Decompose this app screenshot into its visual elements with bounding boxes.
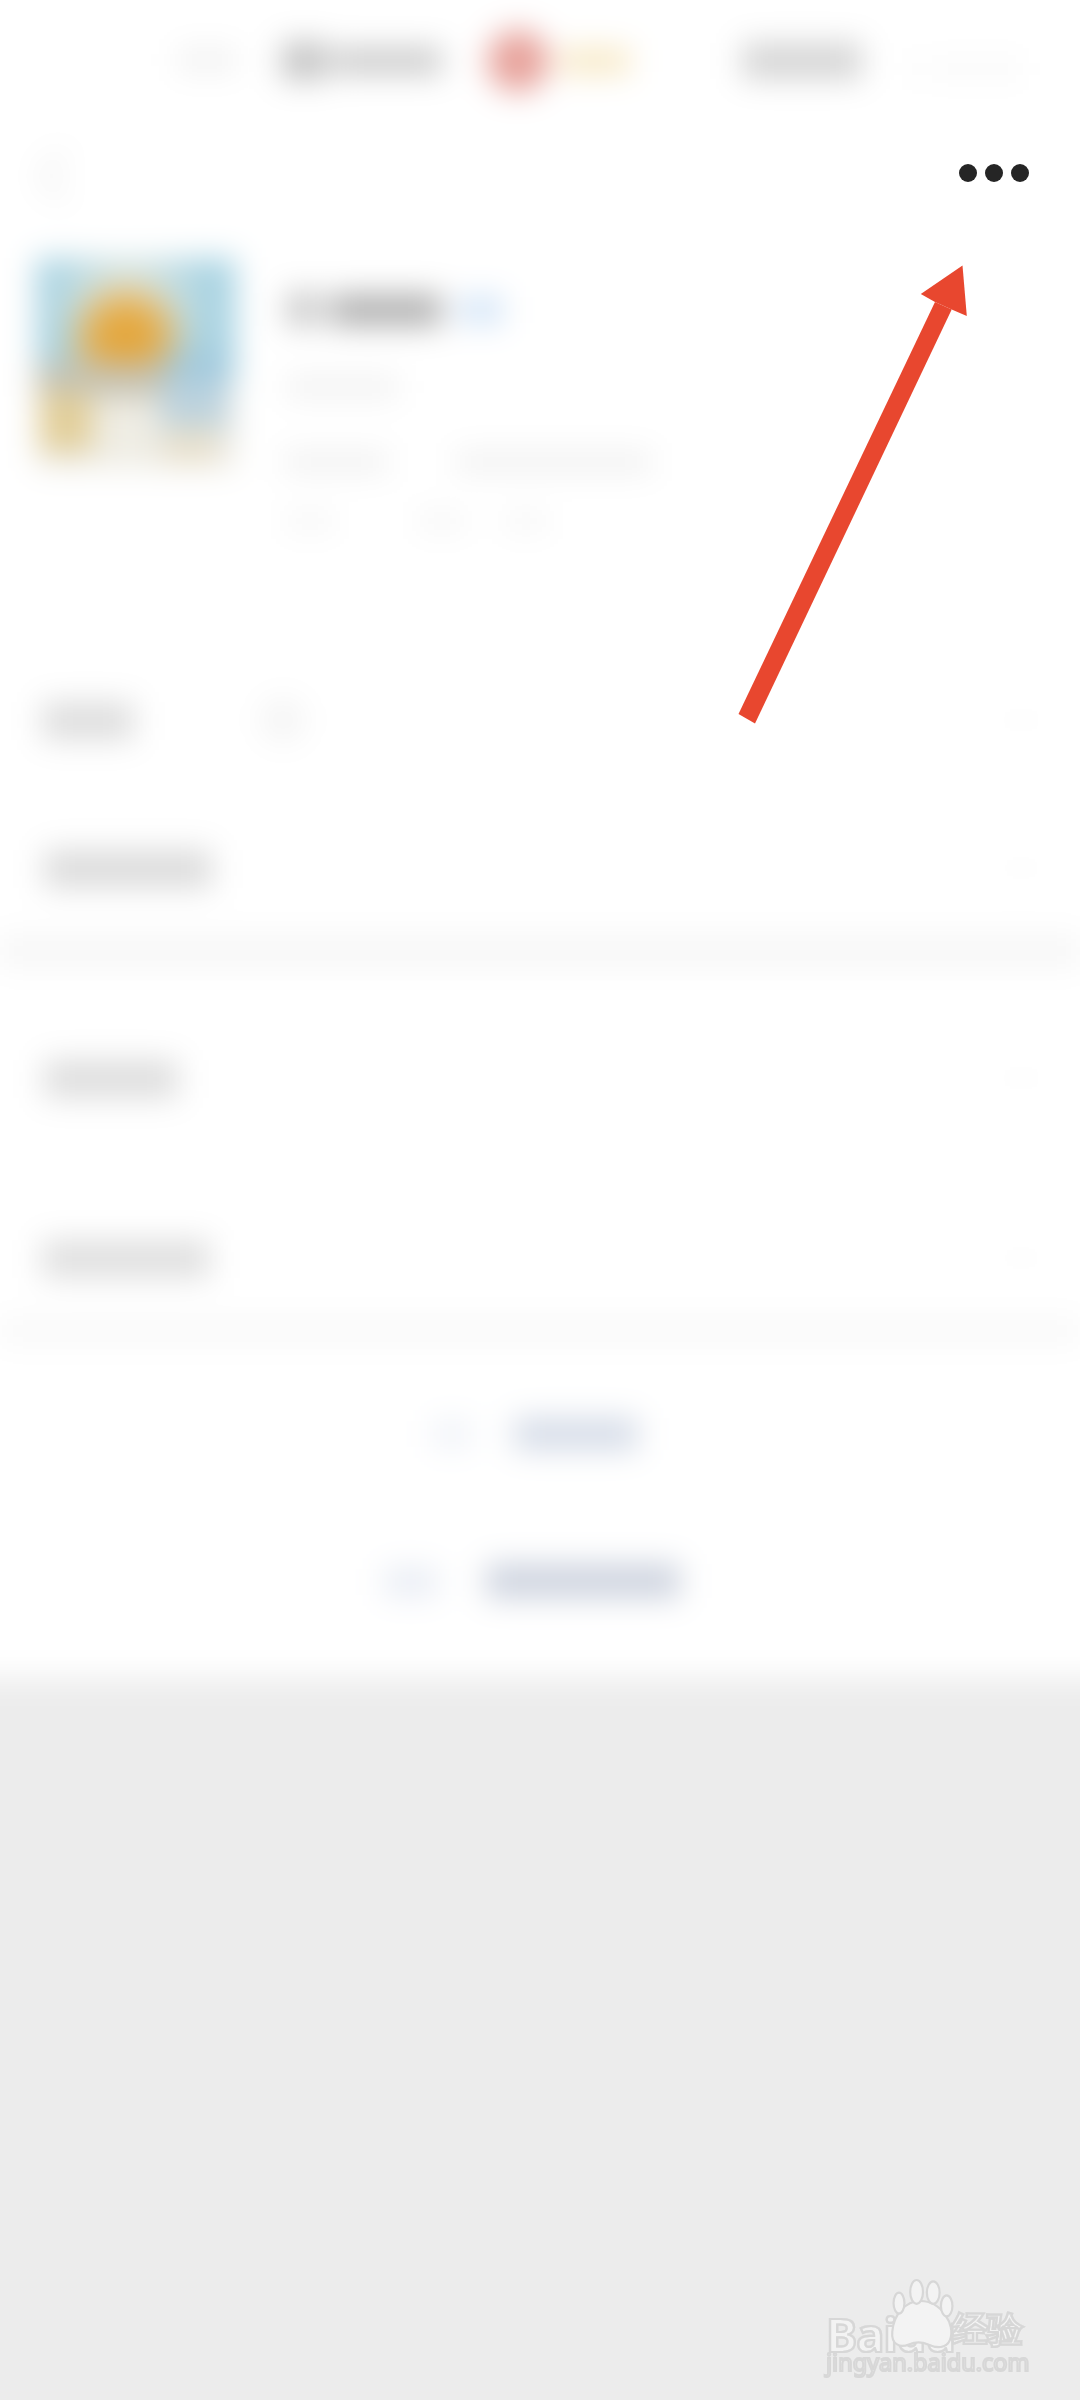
staticText: 经验 [952, 2308, 1022, 2352]
button[interactable]: More options [955, 145, 1055, 201]
staticText: Baidu [826, 2302, 955, 2366]
staticText: jingyan.baidu.com [826, 2346, 1030, 2378]
staticText: jingyan.baidu.com [826, 2346, 1030, 2378]
staticText: 经验 [952, 2308, 1022, 2352]
staticText: Baidu [826, 2302, 955, 2366]
